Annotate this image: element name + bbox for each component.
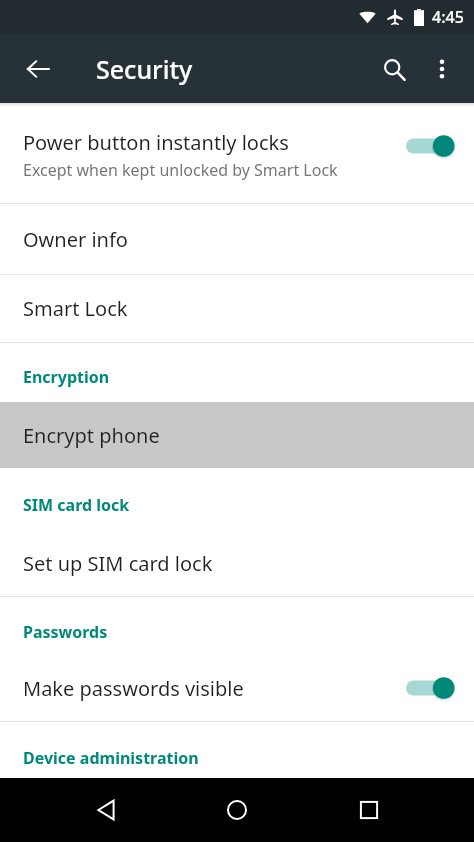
staticText: 4:45 <box>432 6 464 28</box>
button[interactable]: Navigate up <box>14 45 62 93</box>
staticText: Power button instantly locks <box>23 129 289 156</box>
button[interactable]: Search <box>370 45 418 93</box>
button[interactable]: Recent apps <box>343 784 395 836</box>
button[interactable]: Toggle <box>406 131 456 161</box>
button[interactable]: Back <box>80 784 132 836</box>
staticText: Device administration <box>23 747 199 766</box>
staticText: Security <box>96 52 193 86</box>
button[interactable]: Power button instantly locks <box>0 107 474 203</box>
button[interactable]: Encrypt phone <box>0 402 474 468</box>
button[interactable]: Smart Lock <box>0 275 474 342</box>
button[interactable]: Home <box>211 784 263 836</box>
staticText: Encryption <box>23 366 110 388</box>
staticText: SIM card lock <box>23 494 130 516</box>
staticText: Except when kept unlocked by Smart Lock <box>23 159 338 181</box>
staticText: Encrypt phone <box>23 422 160 449</box>
staticText: Passwords <box>23 621 108 643</box>
staticText: Owner info <box>23 226 128 253</box>
button[interactable]: More options <box>418 45 466 93</box>
button[interactable]: Set up SIM card lock <box>0 530 474 596</box>
button[interactable]: Owner info <box>0 204 474 274</box>
staticText: Set up SIM card lock <box>23 550 213 577</box>
staticText: Make passwords visible <box>23 675 398 702</box>
staticText: Smart Lock <box>23 295 128 322</box>
button[interactable]: Toggle <box>406 673 456 703</box>
button[interactable]: Make passwords visible <box>0 655 474 721</box>
